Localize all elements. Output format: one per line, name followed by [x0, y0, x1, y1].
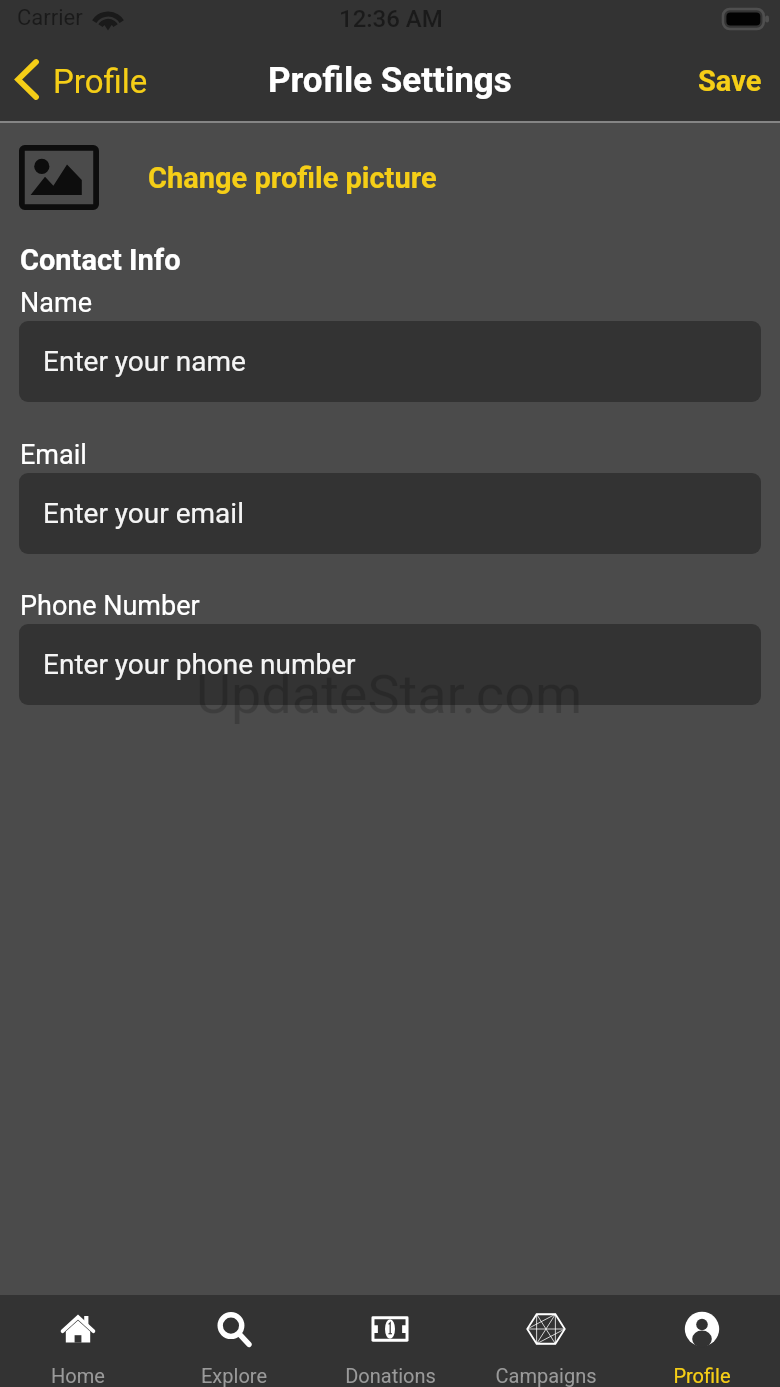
staticText: Change profile picture — [148, 161, 437, 195]
staticText: Email — [20, 439, 87, 471]
button[interactable]: Donations — [312, 1295, 468, 1387]
staticText: Enter your email — [43, 497, 244, 530]
button[interactable]: Enter your email — [19, 473, 761, 554]
staticText: Donations — [345, 1364, 436, 1387]
staticText: Profile Settings — [268, 60, 512, 101]
staticText: 12:36 AM — [339, 5, 443, 33]
button[interactable]: Campaigns — [468, 1295, 624, 1387]
staticText: Profile — [53, 62, 148, 101]
staticText: Explore — [201, 1364, 267, 1387]
button[interactable]: Profile — [624, 1295, 780, 1387]
button[interactable]: Enter your name — [19, 321, 761, 402]
button[interactable]: Change profile picture — [0, 133, 780, 222]
button[interactable]: Explore — [156, 1295, 312, 1387]
staticText: Name — [20, 287, 92, 319]
staticText: Carrier — [17, 5, 83, 31]
other: Back — [15, 59, 39, 100]
staticText: Campaigns — [495, 1364, 597, 1387]
button[interactable]: Back — [0, 55, 160, 104]
staticText: Contact Info — [20, 243, 181, 277]
staticText: Save — [698, 64, 762, 98]
staticText: Enter your phone number — [43, 648, 356, 681]
button[interactable]: Home — [0, 1295, 156, 1387]
staticText: Phone Number — [20, 590, 200, 622]
staticText: UpdateStar.com — [196, 663, 583, 726]
staticText: Enter your name — [43, 345, 246, 378]
button[interactable]: Save — [678, 56, 780, 106]
staticText: Home — [51, 1364, 105, 1387]
button[interactable]: Enter your phone number — [19, 624, 761, 705]
staticText: Profile — [673, 1364, 731, 1387]
